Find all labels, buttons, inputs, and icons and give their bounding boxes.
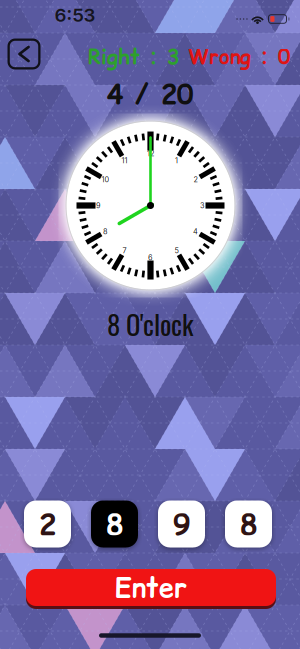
staticText: 9 xyxy=(96,201,101,210)
staticText: 5 xyxy=(174,246,178,255)
button[interactable]: Back xyxy=(7,38,40,69)
button[interactable]: 8 xyxy=(91,500,138,547)
staticText: 8 xyxy=(106,504,123,544)
button[interactable]: 8 xyxy=(225,500,272,547)
staticText: 3 xyxy=(200,201,205,210)
staticText: 6 xyxy=(148,253,153,262)
staticText: Enter xyxy=(115,569,187,606)
button[interactable]: 2 xyxy=(24,500,71,547)
staticText: 2 xyxy=(193,175,197,184)
button[interactable]: Enter xyxy=(26,569,276,606)
staticText: 7 xyxy=(122,246,126,255)
staticText: 8 xyxy=(103,227,108,236)
staticText: 1 xyxy=(175,156,178,165)
staticText: Right : 3 xyxy=(88,43,180,71)
staticText: Wrong : 0 xyxy=(188,43,290,71)
staticText: 8 O'clock xyxy=(107,304,193,344)
staticText: 9 xyxy=(173,504,190,544)
staticText: 6:53 xyxy=(54,4,95,26)
button[interactable]: 9 xyxy=(158,500,205,547)
staticText: 4 / 20 xyxy=(107,75,193,113)
staticText: 8 xyxy=(240,504,257,544)
staticText: 11 xyxy=(121,156,127,165)
staticText: 12 xyxy=(147,149,154,158)
staticText: 2 xyxy=(39,504,56,544)
staticText: 10 xyxy=(101,175,109,184)
staticText: 4 xyxy=(193,227,198,236)
